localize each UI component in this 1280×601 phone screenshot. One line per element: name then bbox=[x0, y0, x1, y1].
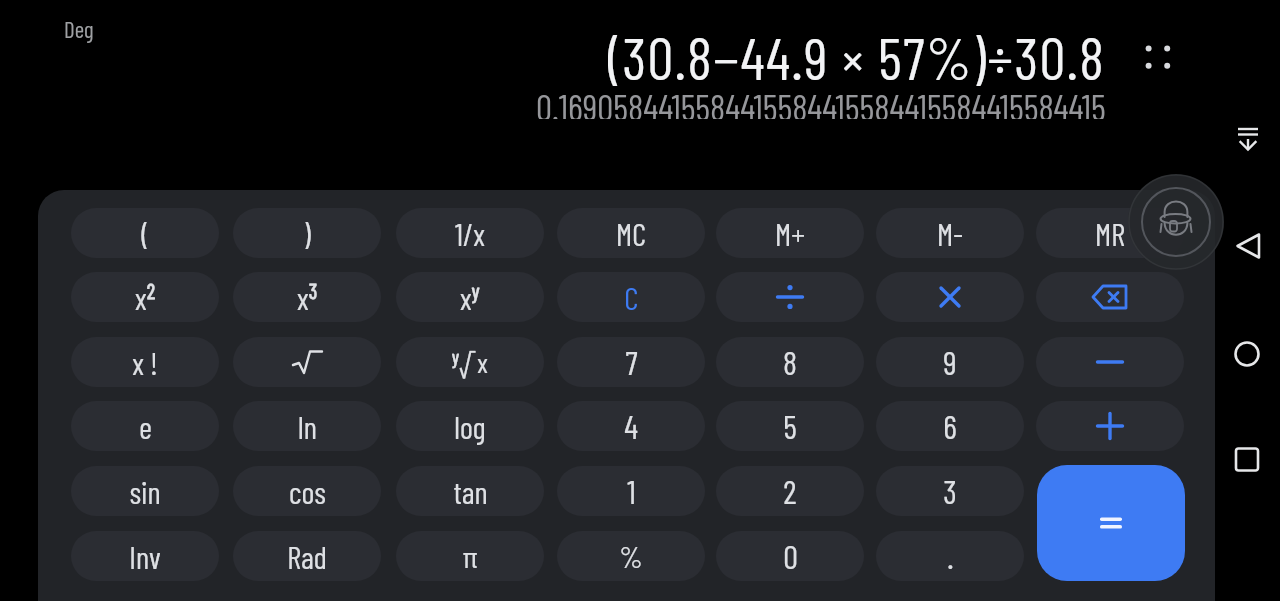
button[interactable]: % bbox=[557, 531, 705, 581]
staticText: 1/x bbox=[455, 215, 485, 252]
button[interactable]: ( bbox=[71, 208, 219, 258]
button[interactable]: x3 bbox=[233, 272, 381, 322]
button[interactable] bbox=[1227, 440, 1267, 480]
button[interactable] bbox=[1037, 465, 1185, 581]
button[interactable]: M+ bbox=[716, 208, 864, 258]
button[interactable]: MR bbox=[1036, 208, 1184, 258]
staticText: xy bbox=[460, 278, 480, 316]
button[interactable]: C bbox=[557, 272, 705, 322]
staticText: tan bbox=[453, 473, 488, 510]
staticText: y√x bbox=[452, 345, 488, 379]
staticText: MR bbox=[1095, 215, 1125, 252]
button[interactable] bbox=[1036, 401, 1184, 451]
button[interactable]: 8 bbox=[716, 337, 864, 387]
staticText: MC bbox=[616, 215, 646, 252]
button[interactable]: 2 bbox=[716, 466, 864, 516]
staticText: 0 bbox=[783, 536, 798, 576]
staticText: ( bbox=[141, 214, 149, 252]
staticText: 1 bbox=[627, 471, 636, 511]
button[interactable]: ln bbox=[233, 401, 381, 451]
button[interactable]: ) bbox=[233, 208, 381, 258]
button[interactable]: cos bbox=[233, 466, 381, 516]
button[interactable]: 1/x bbox=[396, 208, 544, 258]
staticText: 4 bbox=[624, 406, 638, 446]
staticText: π bbox=[462, 538, 478, 574]
staticText: 8 bbox=[783, 342, 797, 382]
button[interactable] bbox=[716, 272, 864, 322]
button[interactable]: M- bbox=[876, 208, 1024, 258]
button[interactable]: x ! bbox=[71, 337, 219, 387]
button[interactable]: 0 bbox=[716, 531, 864, 581]
staticText: cos bbox=[289, 473, 326, 510]
staticText: M+ bbox=[775, 215, 805, 252]
staticText: 6 bbox=[943, 406, 957, 446]
staticText: C bbox=[624, 278, 639, 316]
staticText: 9 bbox=[943, 342, 957, 382]
button[interactable] bbox=[1036, 272, 1184, 322]
button[interactable]: sin bbox=[71, 466, 219, 516]
staticText: 7 bbox=[625, 342, 638, 382]
button[interactable]: y√x bbox=[396, 337, 544, 387]
button[interactable]: 6 bbox=[876, 401, 1024, 451]
button[interactable] bbox=[1228, 118, 1268, 160]
staticText: x2 bbox=[135, 278, 156, 316]
button[interactable]: 9 bbox=[876, 337, 1024, 387]
staticText: ln bbox=[298, 408, 317, 445]
button[interactable]: 1 bbox=[557, 466, 705, 516]
button[interactable]: Rad bbox=[233, 531, 381, 581]
button[interactable]: xy bbox=[396, 272, 544, 322]
staticText: 5 bbox=[783, 406, 797, 446]
staticText: sin bbox=[129, 473, 161, 510]
button[interactable]: 4 bbox=[557, 401, 705, 451]
staticText: 2 bbox=[783, 471, 797, 511]
staticText: (30.8−44.9 × 57%)÷30.8 bbox=[608, 22, 1106, 86]
button[interactable]: log bbox=[396, 401, 544, 451]
staticText: 3 bbox=[943, 471, 957, 511]
staticText: x3 bbox=[297, 278, 318, 316]
button[interactable]: x2 bbox=[71, 272, 219, 322]
button[interactable]: 3 bbox=[876, 466, 1024, 516]
button[interactable]: 7 bbox=[557, 337, 705, 387]
button[interactable] bbox=[1227, 226, 1267, 266]
staticText: Inv bbox=[129, 538, 161, 575]
button[interactable] bbox=[233, 337, 381, 387]
button[interactable]: 5 bbox=[716, 401, 864, 451]
button[interactable]: MC bbox=[557, 208, 705, 258]
button[interactable] bbox=[876, 272, 1024, 322]
button[interactable]: tan bbox=[396, 466, 544, 516]
staticText: Rad bbox=[287, 538, 327, 575]
staticText: Deg bbox=[64, 15, 94, 43]
button[interactable] bbox=[1134, 34, 1182, 80]
staticText: 0.16905844155844155844155844155844155844… bbox=[536, 85, 1106, 119]
button[interactable]: Inv bbox=[71, 531, 219, 581]
staticText: log bbox=[454, 408, 486, 445]
button[interactable] bbox=[1227, 334, 1267, 374]
button[interactable]: . bbox=[876, 531, 1024, 581]
staticText: M- bbox=[937, 215, 963, 252]
staticText: x ! bbox=[132, 344, 158, 381]
staticText: e bbox=[139, 408, 152, 445]
staticText: ) bbox=[303, 214, 311, 252]
button[interactable]: π bbox=[396, 531, 544, 581]
staticText: % bbox=[619, 538, 643, 574]
button[interactable]: e bbox=[71, 401, 219, 451]
button[interactable] bbox=[1036, 337, 1184, 387]
staticText: . bbox=[947, 536, 954, 576]
